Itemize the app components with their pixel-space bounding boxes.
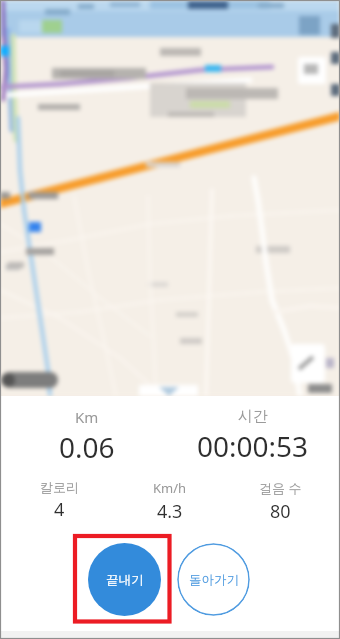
staticText: 돌아가기	[189, 572, 239, 588]
staticText: 시간	[238, 407, 268, 426]
staticText: 00:00:53	[197, 427, 309, 465]
staticText: 4.3	[157, 499, 183, 524]
staticText: 칼로리	[40, 479, 79, 495]
staticText: 4	[54, 497, 65, 522]
button[interactable]: 끝내기	[88, 543, 161, 616]
button[interactable]: 돌아가기	[177, 543, 250, 616]
staticText: 0.06	[59, 428, 115, 466]
staticText: 끝내기	[106, 572, 144, 588]
staticText: Km	[75, 407, 99, 427]
staticText: 80	[270, 499, 291, 524]
staticText: Km/h	[153, 479, 187, 497]
staticText: 걸음 수	[259, 479, 302, 497]
